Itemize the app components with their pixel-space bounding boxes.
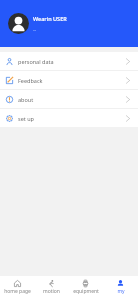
staticText: Feedback — [18, 77, 43, 84]
button[interactable]: about — [0, 90, 138, 108]
button[interactable]: Profile avatar — [8, 13, 29, 34]
staticText: motion — [43, 288, 60, 295]
staticText: home page — [4, 288, 31, 295]
staticText: my — [117, 288, 125, 295]
staticText: about — [18, 96, 34, 103]
button[interactable]: home page — [0, 276, 34, 296]
staticText: personal data — [18, 58, 54, 65]
button[interactable]: my — [103, 276, 138, 296]
button[interactable]: personal data — [0, 52, 138, 70]
button[interactable]: set up — [0, 109, 138, 127]
staticText: -- — [33, 27, 37, 34]
staticText: set up — [18, 115, 34, 122]
button[interactable]: Feedback — [0, 71, 138, 89]
button[interactable]: equipment — [68, 276, 103, 296]
button[interactable]: motion — [34, 276, 68, 296]
staticText: Wearin USER — [33, 15, 67, 22]
staticText: equipment — [73, 288, 99, 295]
